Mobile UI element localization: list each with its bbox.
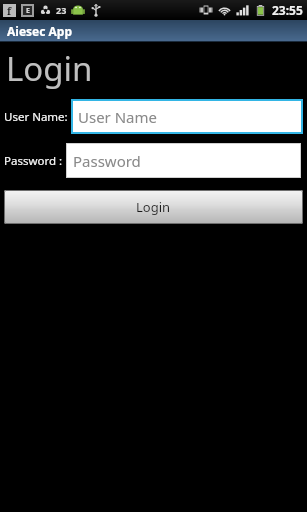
staticText: Login xyxy=(136,198,171,216)
staticText: Login xyxy=(6,46,93,91)
staticText: 23:55 xyxy=(272,2,303,18)
button[interactable]: Login xyxy=(4,190,303,224)
staticText: 23 xyxy=(56,4,67,16)
staticText: Password : xyxy=(4,153,63,169)
staticText: Aiesec App xyxy=(7,23,73,39)
button[interactable]: Password xyxy=(66,143,301,178)
staticText: User Name: xyxy=(4,109,68,125)
button[interactable]: User Name xyxy=(71,99,303,134)
staticText: f xyxy=(7,4,12,17)
staticText: E xyxy=(26,6,30,15)
staticText: User Name xyxy=(78,107,158,127)
staticText: Password xyxy=(73,151,141,171)
